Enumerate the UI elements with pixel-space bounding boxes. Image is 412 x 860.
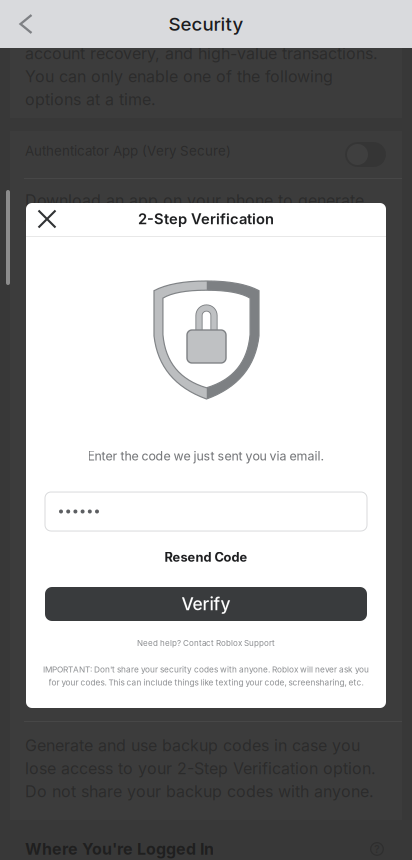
button[interactable]: Need help? Contact Roblox Support [26,637,386,649]
staticText: account recovery, and high-value transac… [25,44,378,63]
staticText: Resend Code [164,549,247,565]
button[interactable]: Verify [45,587,367,621]
staticText: lose access to your 2-Step Verification … [25,759,376,778]
staticText: options at a time. [25,90,156,109]
staticText: Verify [181,593,230,614]
button[interactable]: Back [0,0,52,48]
button[interactable]: Resend Code [146,547,266,567]
staticText: IMPORTANT: Don't share your security cod… [43,664,369,674]
staticText: verification codes. [25,214,165,233]
staticText: Do not share your backup codes with anyo… [25,782,374,801]
staticText: Generate and use backup codes in case yo… [25,736,360,755]
staticText: Security [168,13,243,35]
button[interactable]: Close [26,203,68,235]
staticText: You can only enable one of the following [25,67,333,86]
staticText: Authenticator App (Very Secure) [25,143,231,159]
staticText: Enter the code we just sent you via emai… [87,448,324,463]
staticText: ? [374,842,380,855]
staticText: Download an app on your phone to generat… [25,191,364,210]
staticText: 2-Step Verification [138,210,274,228]
staticText: Need help? Contact Roblox Support [137,638,275,648]
staticText: for your codes. This can include things … [48,677,363,687]
staticText: Where You're Logged In [25,839,214,859]
button[interactable]: Authenticator App toggle [345,142,386,167]
